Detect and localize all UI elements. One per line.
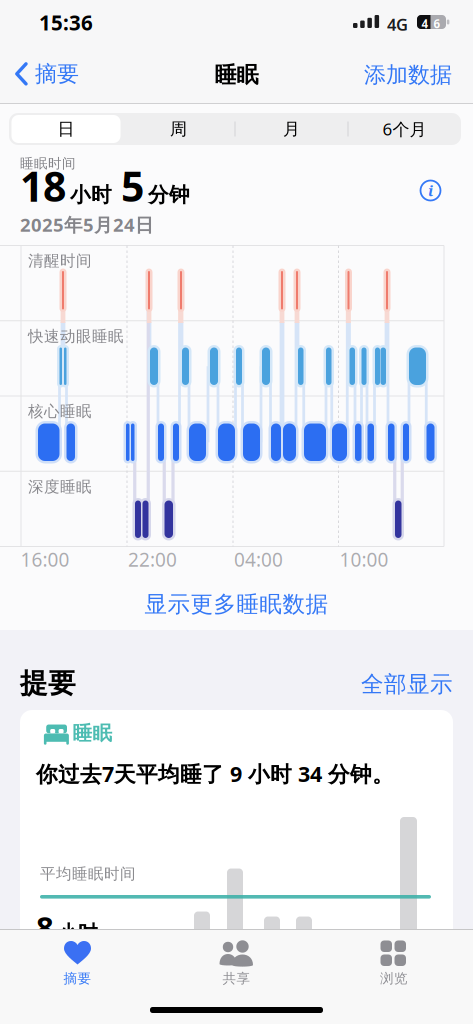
button[interactable]: 摘要 — [22, 936, 132, 991]
staticText: i — [428, 180, 433, 200]
button[interactable]: 添加数据 — [364, 61, 452, 89]
staticText: 6 — [433, 16, 440, 32]
button[interactable]: 共享 — [181, 936, 291, 991]
staticText: 睡眠 — [214, 61, 258, 89]
staticText: 深度睡眠 — [28, 477, 92, 496]
staticText: 清醒时间 — [28, 251, 92, 270]
button[interactable]: 睡眠 — [20, 710, 453, 1024]
staticText: 日 — [57, 118, 74, 140]
staticText: 睡眠 — [72, 721, 112, 746]
button[interactable]: 全部显示 — [0, 670, 453, 698]
staticText: 4 — [421, 16, 428, 32]
staticText: 2025年5月24日 — [20, 212, 154, 237]
staticText: 分钟 — [148, 182, 190, 208]
staticText: 全部显示 — [361, 670, 453, 698]
staticText: 周 — [170, 118, 187, 140]
staticText: 你过去7天平均睡了 9 小时 34 分钟。 — [36, 759, 394, 788]
button[interactable]: 月 — [236, 115, 347, 143]
staticText: 18 — [20, 158, 66, 214]
staticText: 睡眠时间 — [20, 155, 76, 172]
button[interactable]: 显示更多睡眠数据 — [0, 590, 473, 618]
staticText: 摘要 — [35, 60, 79, 88]
staticText: 核心睡眠 — [28, 401, 92, 421]
button[interactable]: 周 — [123, 115, 234, 143]
button[interactable]: 浏览 — [339, 936, 449, 991]
button[interactable]: 更多信息 — [419, 179, 441, 201]
staticText: 6个月 — [382, 117, 426, 141]
staticText: 5 — [121, 158, 144, 214]
staticText: 浏览 — [380, 970, 408, 987]
staticText: 快速动眼睡眠 — [28, 326, 124, 346]
staticText: 平均睡眠时间 — [40, 864, 136, 883]
staticText: 月 — [283, 118, 300, 140]
staticText: 22:00 — [128, 546, 177, 572]
button[interactable]: 摘要 — [0, 60, 79, 88]
staticText: 提要 — [20, 666, 76, 701]
button[interactable]: 6个月 — [349, 115, 460, 143]
staticText: 添加数据 — [364, 61, 452, 89]
staticText: 04:00 — [234, 546, 283, 572]
staticText: 共享 — [222, 970, 250, 987]
staticText: 15:36 — [39, 8, 93, 36]
button[interactable]: 日 — [11, 115, 120, 143]
staticText: 10:00 — [339, 546, 388, 572]
staticText: 8 — [36, 906, 54, 948]
staticText: 显示更多睡眠数据 — [144, 590, 328, 618]
staticText: 16:00 — [20, 546, 69, 572]
staticText: 摘要 — [63, 970, 91, 987]
staticText: 小时 — [58, 920, 98, 945]
staticText: 4G — [387, 13, 408, 35]
staticText: 小时 — [70, 182, 112, 208]
